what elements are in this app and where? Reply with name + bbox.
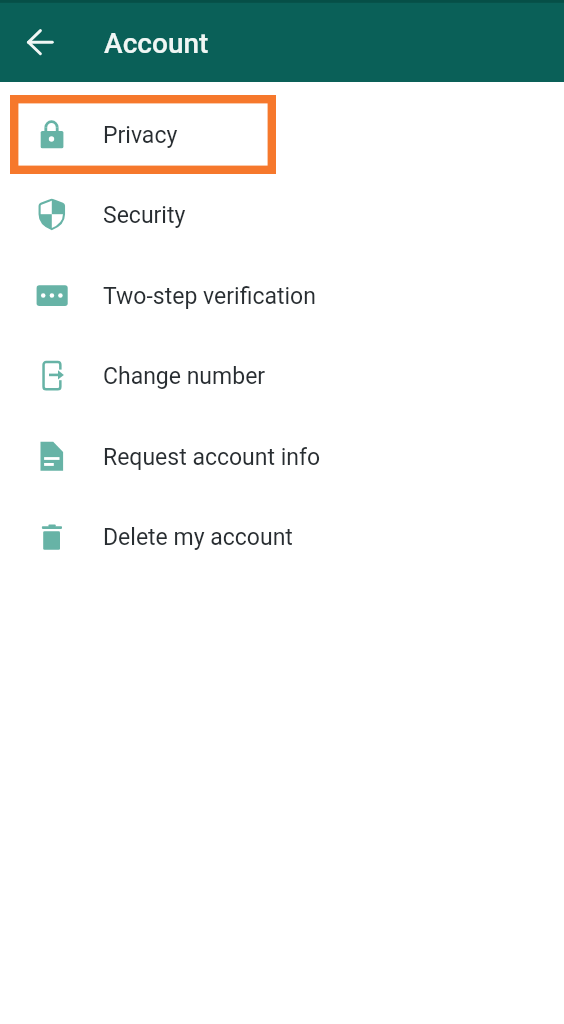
staticText: Request account info (103, 444, 321, 471)
staticText: Two-step verification (103, 283, 316, 310)
staticText: Account (104, 27, 209, 60)
button[interactable]: Two-step verification (0, 255, 564, 336)
button[interactable]: Change number (0, 335, 564, 416)
button[interactable]: Privacy (0, 94, 564, 175)
button[interactable]: Delete my account (0, 496, 564, 577)
button[interactable]: Back (20, 22, 60, 62)
staticText: Delete my account (103, 524, 293, 551)
button[interactable]: Request account info (0, 416, 564, 497)
button[interactable]: Security (0, 174, 564, 255)
staticText: Privacy (103, 122, 178, 149)
staticText: Change number (103, 363, 266, 390)
staticText: Security (103, 202, 186, 229)
